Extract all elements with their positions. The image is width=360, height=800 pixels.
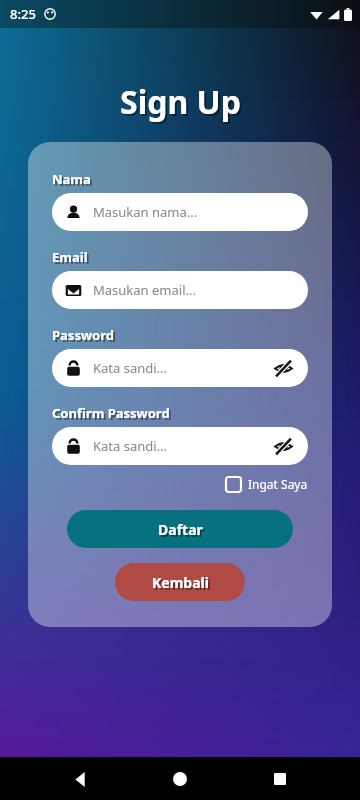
staticText: Sign Up <box>120 80 241 124</box>
staticText: Kembali <box>152 573 209 592</box>
button[interactable]: Toggle password visibility <box>271 434 295 458</box>
button[interactable]: Daftar <box>67 510 293 548</box>
staticText: Email <box>54 250 90 268</box>
button[interactable]: Masukan nama... <box>52 193 308 231</box>
staticText: Masukan nama... <box>93 203 295 221</box>
staticText: Email <box>52 248 88 266</box>
staticText: 8:25 <box>10 5 36 23</box>
staticText: Confirm Password <box>54 406 172 424</box>
staticText: Daftar <box>160 522 205 541</box>
staticText: Sign Up <box>122 82 243 126</box>
staticText: Kata sandi... <box>93 359 271 377</box>
staticText: Masukan email... <box>93 281 295 299</box>
button[interactable]: Home <box>160 759 200 799</box>
staticText: Ingat Saya <box>248 476 308 492</box>
staticText: Nama <box>52 170 91 188</box>
button[interactable]: Masukan email... <box>52 271 308 309</box>
button[interactable]: Ingat Saya <box>226 476 308 492</box>
button[interactable]: Kata sandi... <box>52 427 308 465</box>
staticText: Confirm Password <box>52 404 170 422</box>
button[interactable]: Toggle password visibility <box>271 356 295 380</box>
staticText: Password <box>52 326 114 344</box>
staticText: Password <box>54 328 116 346</box>
staticText: Kata sandi... <box>93 437 271 455</box>
staticText: Daftar <box>158 520 203 539</box>
button[interactable]: Kembali <box>115 563 245 601</box>
button[interactable]: Recents <box>260 759 300 799</box>
button[interactable]: Back <box>60 759 100 799</box>
staticText: Nama <box>54 172 93 190</box>
staticText: Kembali <box>154 575 211 594</box>
button[interactable]: Kata sandi... <box>52 349 308 387</box>
